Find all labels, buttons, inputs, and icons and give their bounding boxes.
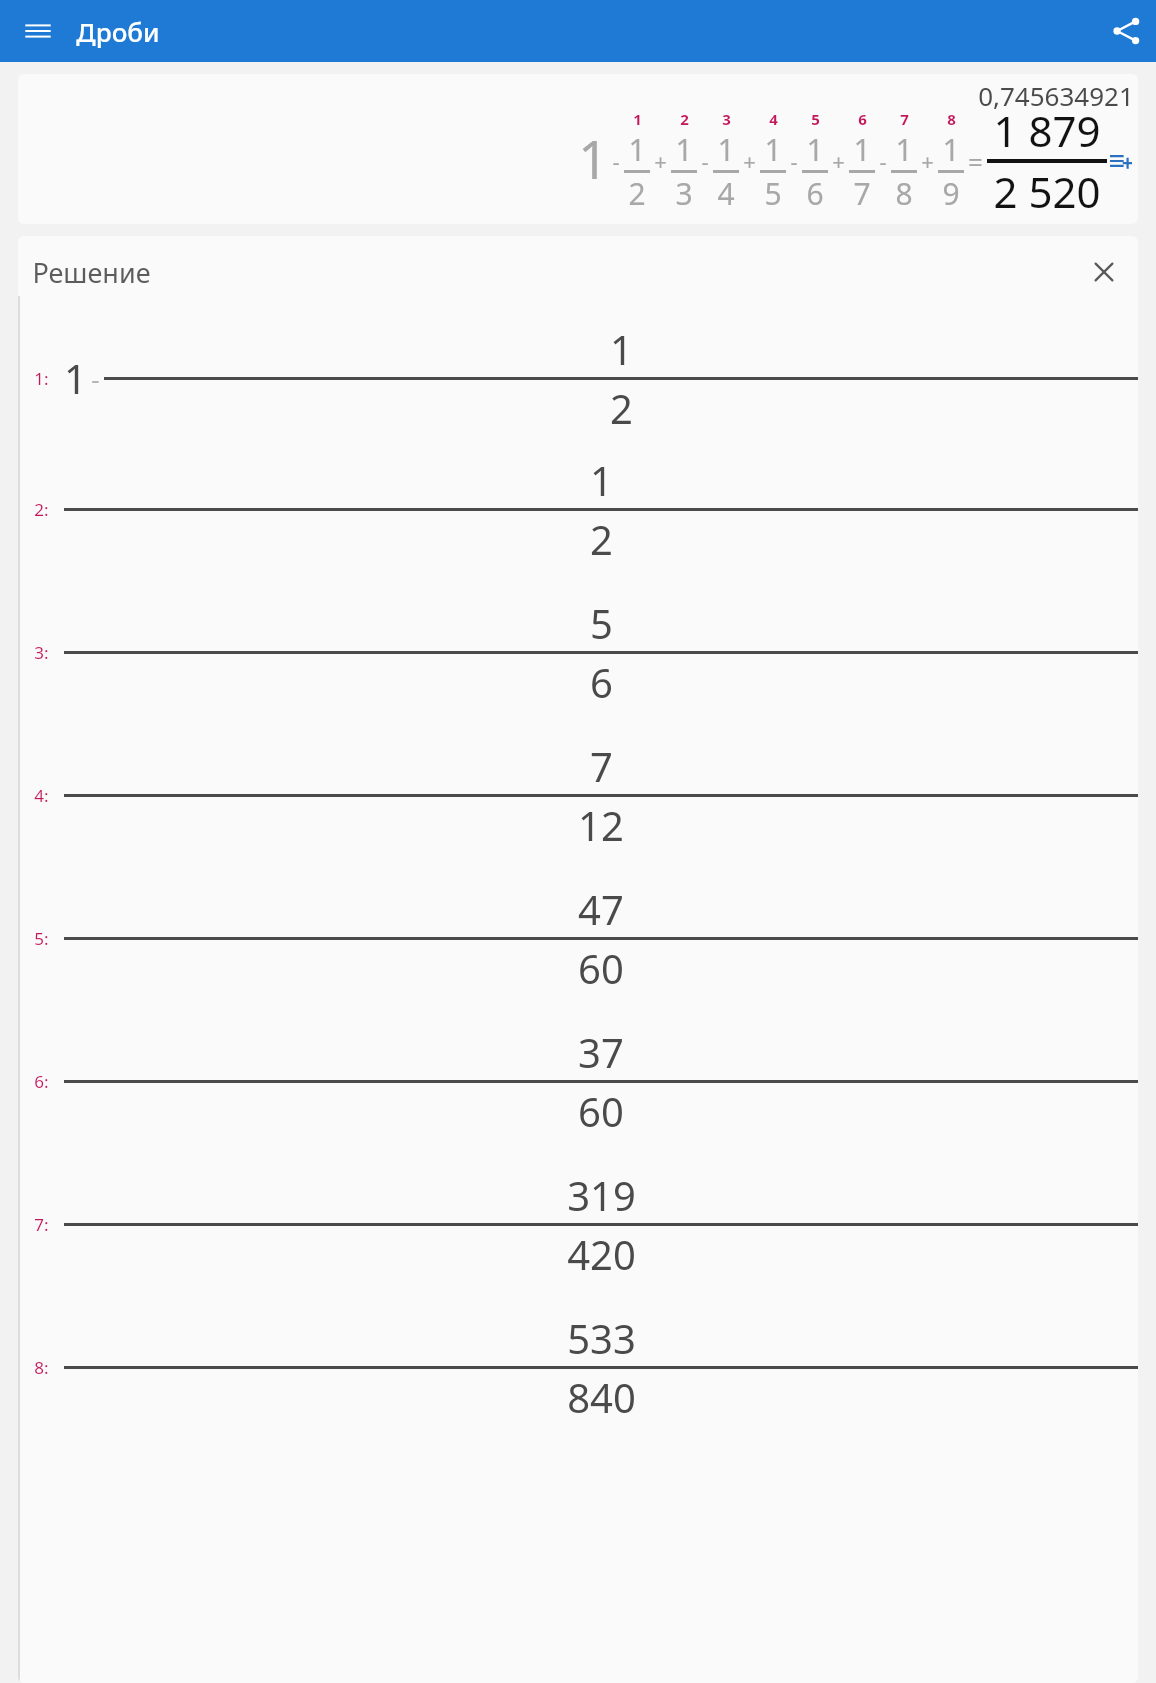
staticText: 6 bbox=[858, 109, 867, 129]
staticText: + bbox=[654, 146, 667, 176]
staticText: 840 bbox=[567, 1370, 636, 1424]
staticText: 1 bbox=[675, 129, 693, 170]
staticText: 2 bbox=[628, 173, 646, 214]
staticText: 3 bbox=[675, 173, 693, 214]
staticText: 7 bbox=[900, 109, 909, 129]
staticText: 47 bbox=[578, 882, 624, 936]
staticText: 5 bbox=[811, 109, 820, 129]
staticText: 7 bbox=[590, 739, 613, 793]
button[interactable]: 8: bbox=[18, 1296, 1138, 1439]
staticText: 2 bbox=[610, 381, 633, 435]
staticText: = bbox=[968, 144, 983, 179]
staticText: 1 bbox=[64, 351, 87, 405]
button[interactable]: 1: bbox=[18, 318, 1138, 438]
staticText: 5 bbox=[590, 596, 613, 650]
staticText: - bbox=[790, 146, 798, 176]
button[interactable]: 7: bbox=[18, 1153, 1138, 1296]
button[interactable]: 6: bbox=[18, 1010, 1138, 1153]
staticText: 1 bbox=[806, 129, 824, 170]
staticText: 1 bbox=[628, 129, 646, 170]
staticText: 1 879 bbox=[993, 102, 1101, 159]
staticText: 4 bbox=[769, 109, 778, 129]
staticText: + bbox=[832, 146, 845, 176]
button[interactable]: 0,745634921 bbox=[18, 74, 1138, 224]
button[interactable]: 4: bbox=[18, 724, 1138, 867]
staticText: 12 bbox=[578, 798, 624, 852]
staticText: 9 bbox=[942, 173, 960, 214]
staticText: 1 bbox=[590, 453, 613, 507]
button[interactable]: Share bbox=[1100, 5, 1152, 57]
staticText: 1 bbox=[764, 129, 782, 170]
staticText: 6: bbox=[34, 1070, 49, 1093]
staticText: 60 bbox=[578, 941, 624, 995]
staticText: 5 bbox=[764, 173, 782, 214]
staticText: 1 bbox=[633, 109, 642, 129]
staticText: 1 bbox=[610, 322, 633, 376]
button[interactable]: 3: bbox=[18, 581, 1138, 724]
staticText: 8 bbox=[947, 109, 956, 129]
staticText: 420 bbox=[567, 1227, 636, 1281]
staticText: 7: bbox=[34, 1213, 49, 1236]
staticText: 5: bbox=[34, 927, 49, 950]
staticText: 7 bbox=[853, 173, 871, 214]
staticText: 1: bbox=[34, 367, 49, 390]
staticText: 2 520 bbox=[993, 163, 1101, 220]
staticText: 2 bbox=[590, 512, 613, 566]
staticText: 533 bbox=[567, 1311, 636, 1365]
staticText: 1 bbox=[895, 129, 913, 170]
staticText: - bbox=[879, 146, 887, 176]
staticText: - bbox=[91, 361, 100, 396]
staticText: 6 bbox=[590, 655, 613, 709]
staticText: 60 bbox=[578, 1084, 624, 1138]
staticText: 8: bbox=[34, 1356, 49, 1379]
staticText: Дроби bbox=[76, 14, 160, 49]
staticText: 1 bbox=[578, 123, 608, 194]
staticText: + bbox=[921, 146, 934, 176]
button[interactable]: Menu bbox=[16, 9, 60, 53]
staticText: 6 bbox=[806, 173, 824, 214]
staticText: 1 bbox=[942, 129, 960, 170]
staticText: 319 bbox=[567, 1168, 636, 1222]
staticText: 37 bbox=[578, 1025, 624, 1079]
staticText: 0,745634921 bbox=[978, 78, 1134, 113]
button[interactable]: 2: bbox=[18, 452, 1138, 567]
staticText: 1 bbox=[717, 129, 735, 170]
staticText: - bbox=[612, 146, 620, 176]
staticText: 2 bbox=[680, 109, 689, 129]
staticText: 4 bbox=[717, 173, 735, 214]
staticText: 3: bbox=[34, 641, 49, 664]
staticText: 2: bbox=[34, 498, 49, 521]
staticText: 4: bbox=[34, 784, 49, 807]
staticText: Решение bbox=[32, 254, 151, 291]
button[interactable]: Close bbox=[1084, 252, 1124, 292]
button[interactable]: 5: bbox=[18, 867, 1138, 1010]
staticText: 1 bbox=[853, 129, 871, 170]
staticText: - bbox=[701, 146, 709, 176]
staticText: 8 bbox=[895, 173, 913, 214]
staticText: 3 bbox=[722, 109, 731, 129]
staticText: + bbox=[743, 146, 756, 176]
